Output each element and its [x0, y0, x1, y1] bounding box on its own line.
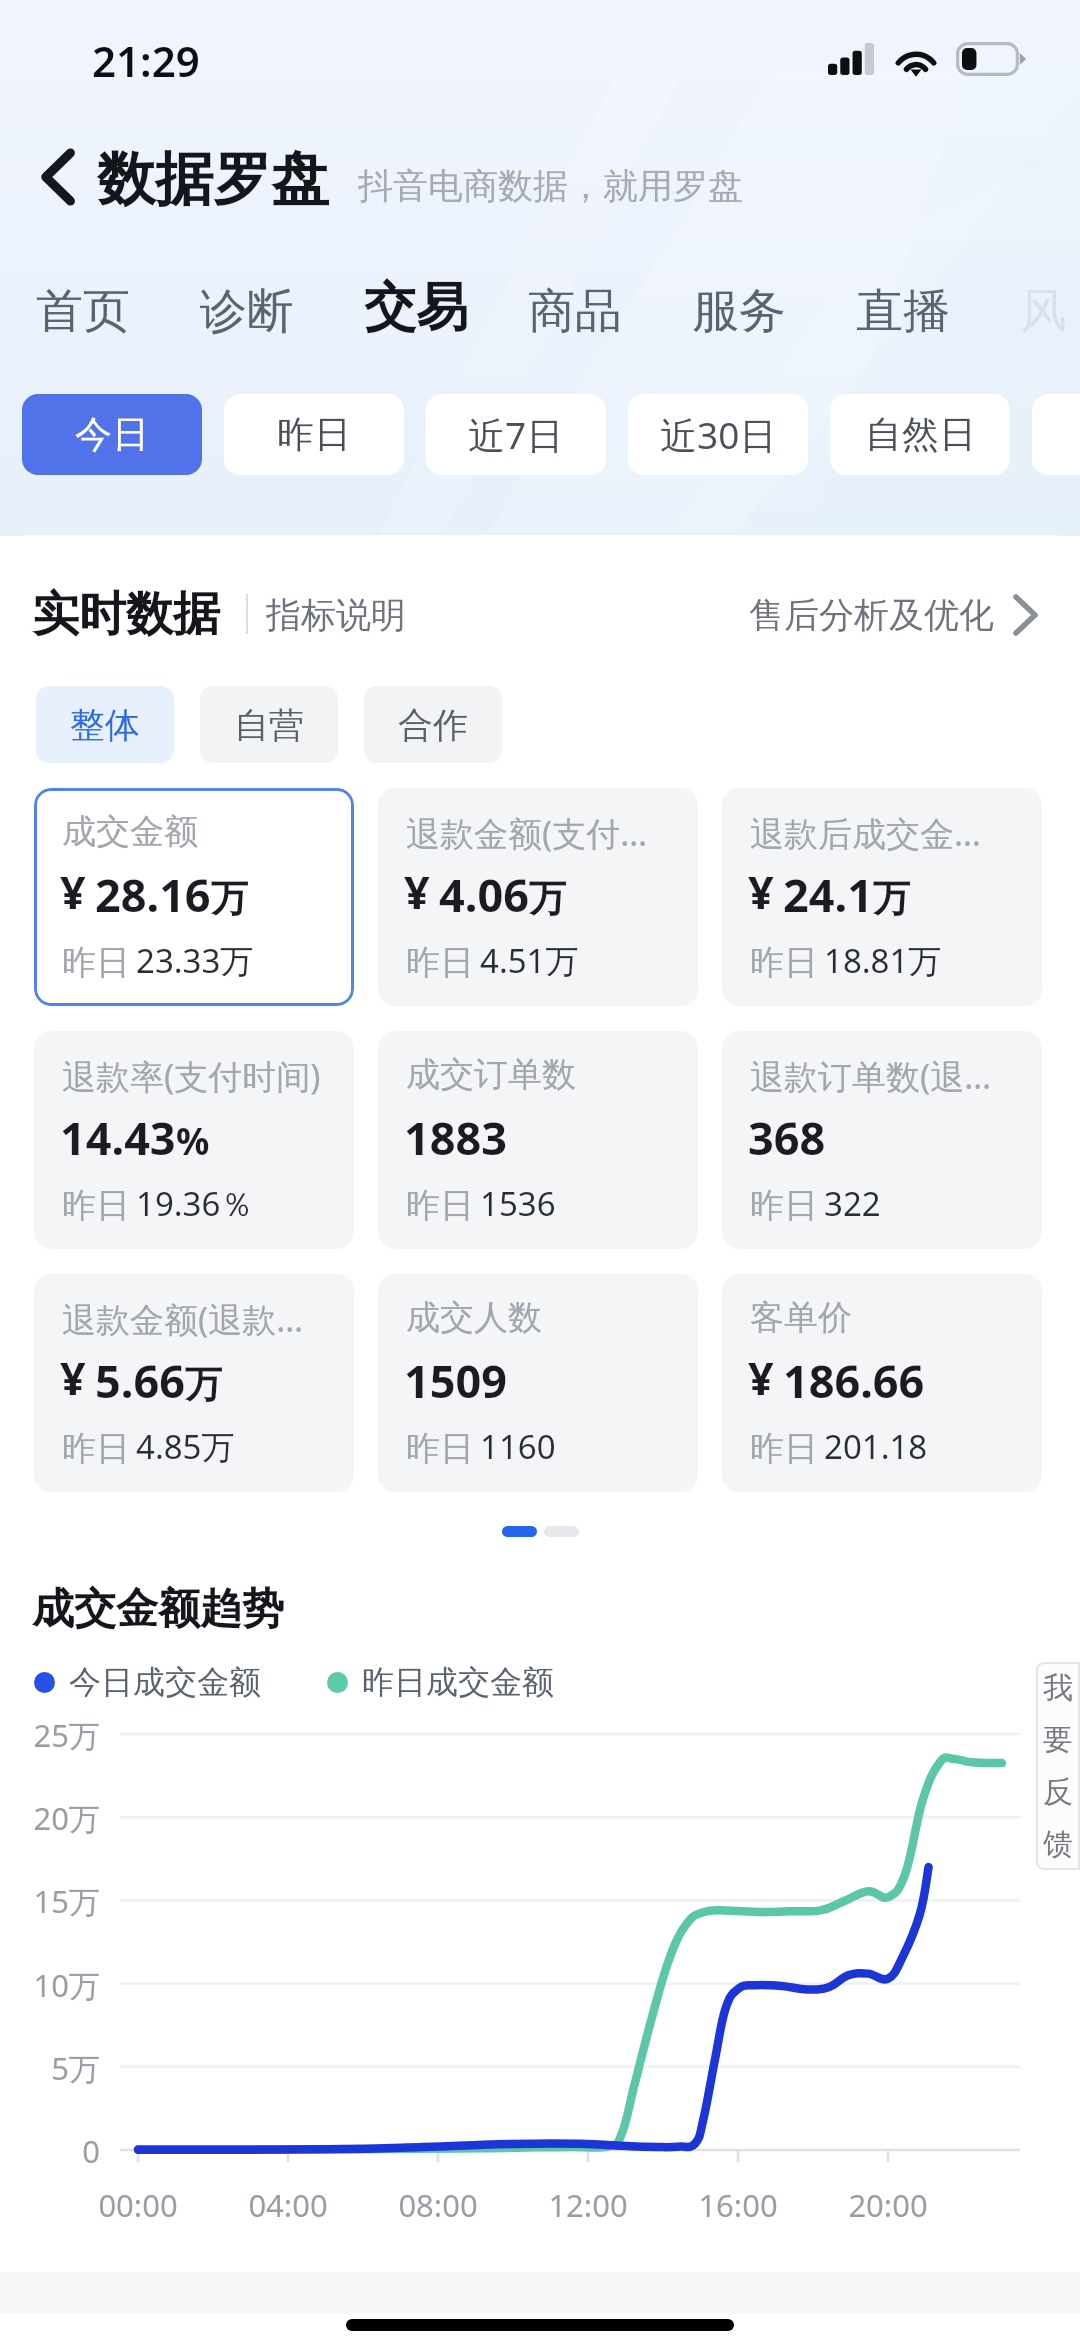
- staticText: 4.51万: [480, 938, 579, 983]
- staticText: 退款订单数(退…: [750, 1053, 992, 1099]
- button[interactable]: 成交人数: [378, 1274, 698, 1492]
- staticText: 指标说明: [266, 593, 406, 637]
- button[interactable]: 成交订单数: [378, 1031, 698, 1249]
- staticText: 服务: [692, 282, 786, 341]
- staticText: 昨日: [750, 941, 818, 984]
- staticText: 1160: [480, 1424, 556, 1469]
- staticText: 万: [185, 1361, 222, 1408]
- staticText: 整体: [70, 703, 140, 747]
- staticText: 昨日: [277, 411, 351, 458]
- staticText: 商品: [528, 282, 622, 341]
- button[interactable]: 我: [1036, 1662, 1080, 1870]
- button[interactable]: 交易: [354, 266, 478, 350]
- staticText: 昨日: [406, 1184, 474, 1227]
- button[interactable]: 客单价: [722, 1274, 1042, 1492]
- staticText: 反: [1043, 1773, 1073, 1811]
- staticText: 昨日: [406, 1427, 474, 1470]
- staticText: 322: [824, 1181, 881, 1226]
- staticText: 20万: [0, 1797, 100, 1839]
- staticText: ¥: [404, 861, 430, 922]
- button[interactable]: 直播: [846, 266, 960, 350]
- button[interactable]: 退款后成交金…: [722, 788, 1042, 1006]
- staticText: 15万: [0, 1880, 100, 1922]
- staticText: 诊断: [200, 282, 294, 341]
- button[interactable]: 自: [1032, 394, 1080, 475]
- staticText: 14.43: [60, 1107, 176, 1168]
- button[interactable]: 退款金额(退款…: [34, 1274, 354, 1492]
- staticText: 0: [0, 2130, 100, 2172]
- button[interactable]: 合作: [364, 686, 502, 763]
- staticText: 4.85万: [136, 1424, 235, 1469]
- button[interactable]: 售后分析及优化: [749, 593, 1038, 637]
- staticText: 成交金额: [62, 810, 198, 853]
- button[interactable]: 诊断: [190, 266, 304, 350]
- staticText: 25万: [0, 1714, 100, 1756]
- staticText: 成交订单数: [406, 1053, 576, 1096]
- staticText: 近30日: [660, 409, 777, 460]
- staticText: 要: [1043, 1721, 1073, 1759]
- button[interactable]: 退款订单数(退…: [722, 1031, 1042, 1249]
- staticText: 186.66: [783, 1350, 925, 1411]
- staticText: 201.18: [824, 1424, 928, 1469]
- staticText: 成交人数: [406, 1296, 542, 1339]
- staticText: 客单价: [750, 1296, 852, 1339]
- staticText: 20:00: [813, 2184, 963, 2226]
- button[interactable]: 今日: [22, 394, 202, 475]
- staticText: 退款金额(支付…: [406, 810, 648, 856]
- staticText: 万: [211, 875, 248, 922]
- staticText: 今日成交金额: [69, 1662, 261, 1702]
- button[interactable]: 整体: [36, 686, 174, 763]
- button[interactable]: 成交金额: [34, 788, 354, 1006]
- staticText: 4.06: [439, 864, 529, 925]
- staticText: 昨日: [62, 1427, 130, 1470]
- staticText: 昨日: [62, 941, 130, 984]
- button[interactable]: 自然日: [830, 394, 1010, 475]
- staticText: 首页: [36, 282, 130, 341]
- staticText: 退款后成交金…: [750, 810, 981, 856]
- staticText: 交易: [364, 275, 468, 341]
- staticText: 我: [1043, 1669, 1073, 1707]
- button[interactable]: 自营: [200, 686, 338, 763]
- button[interactable]: 首页: [26, 266, 140, 350]
- button[interactable]: 近30日: [628, 394, 808, 475]
- button[interactable]: 退款金额(支付…: [378, 788, 698, 1006]
- staticText: 24.1: [783, 864, 873, 925]
- staticText: 馈: [1043, 1825, 1073, 1863]
- staticText: 直播: [856, 282, 950, 341]
- button[interactable]: 近7日: [426, 394, 606, 475]
- button[interactable]: 商品: [518, 266, 632, 350]
- staticText: 抖音电商数据，就用罗盘: [358, 164, 743, 208]
- staticText: 昨日: [62, 1184, 130, 1227]
- staticText: 今日: [75, 411, 149, 458]
- button[interactable]: Back: [24, 142, 94, 212]
- button[interactable]: 昨日: [224, 394, 404, 475]
- staticText: ¥: [748, 861, 774, 922]
- staticText: 1883: [404, 1107, 507, 1168]
- staticText: 昨日: [750, 1427, 818, 1470]
- staticText: 自然日: [865, 411, 976, 458]
- staticText: ¥: [60, 861, 86, 922]
- staticText: 28.16: [95, 864, 211, 925]
- staticText: 18.81万: [824, 938, 942, 983]
- staticText: ¥: [748, 1347, 774, 1408]
- button[interactable]: 风: [1010, 266, 1077, 350]
- staticText: 实时数据: [32, 585, 220, 644]
- button[interactable]: 服务: [682, 266, 796, 350]
- staticText: 退款率(支付时间): [62, 1053, 321, 1099]
- staticText: 昨日成交金额: [362, 1662, 554, 1702]
- staticText: 成交金额趋势: [32, 1583, 284, 1636]
- staticText: 近7日: [468, 409, 564, 460]
- button[interactable]: 指标说明: [266, 593, 406, 637]
- staticText: 合作: [398, 703, 468, 747]
- staticText: 1536: [480, 1181, 556, 1226]
- staticText: 23.33万: [136, 938, 254, 983]
- staticText: 5万: [0, 2047, 100, 2089]
- staticText: ¥: [60, 1347, 86, 1408]
- button[interactable]: 退款率(支付时间): [34, 1031, 354, 1249]
- staticText: 12:00: [513, 2184, 663, 2226]
- staticText: 自营: [234, 703, 304, 747]
- staticText: 万: [873, 875, 910, 922]
- staticText: 售后分析及优化: [749, 593, 994, 637]
- staticText: 5.66: [95, 1350, 185, 1411]
- staticText: 16:00: [663, 2184, 813, 2226]
